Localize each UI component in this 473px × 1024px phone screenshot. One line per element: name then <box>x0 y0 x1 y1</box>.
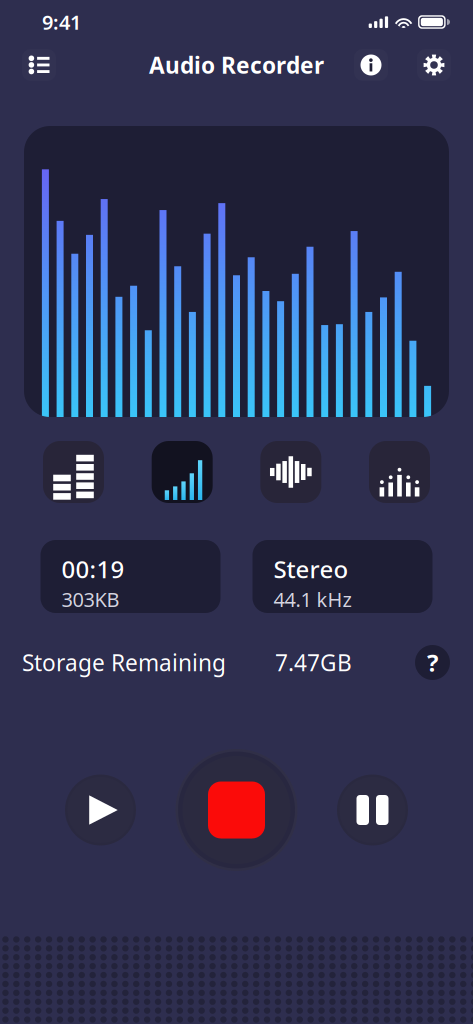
button[interactable]: Stop recording <box>175 749 297 871</box>
button[interactable]: Storage help <box>415 645 450 680</box>
button[interactable]: Settings <box>417 49 451 81</box>
button[interactable]: Pause <box>337 774 408 845</box>
staticText: 9:41 <box>42 9 81 35</box>
staticText: Storage Remaining <box>22 647 226 677</box>
staticText: Audio Recorder <box>149 50 324 80</box>
staticText: 7.47GB <box>275 647 352 677</box>
staticText: ? <box>427 647 438 678</box>
staticText: 303KB <box>61 586 119 612</box>
button[interactable]: Recordings <box>22 49 56 81</box>
staticText: 44.1 kHz <box>273 586 351 612</box>
staticText: Stereo <box>273 553 348 585</box>
button[interactable]: Bar meter <box>43 441 104 503</box>
button[interactable]: Waveform <box>260 441 321 503</box>
button[interactable]: Level meter <box>152 441 213 503</box>
button[interactable]: Spectrum <box>369 441 430 503</box>
button[interactable]: Information <box>354 49 388 81</box>
button[interactable]: Play <box>65 774 136 845</box>
staticText: 00:19 <box>61 553 124 585</box>
